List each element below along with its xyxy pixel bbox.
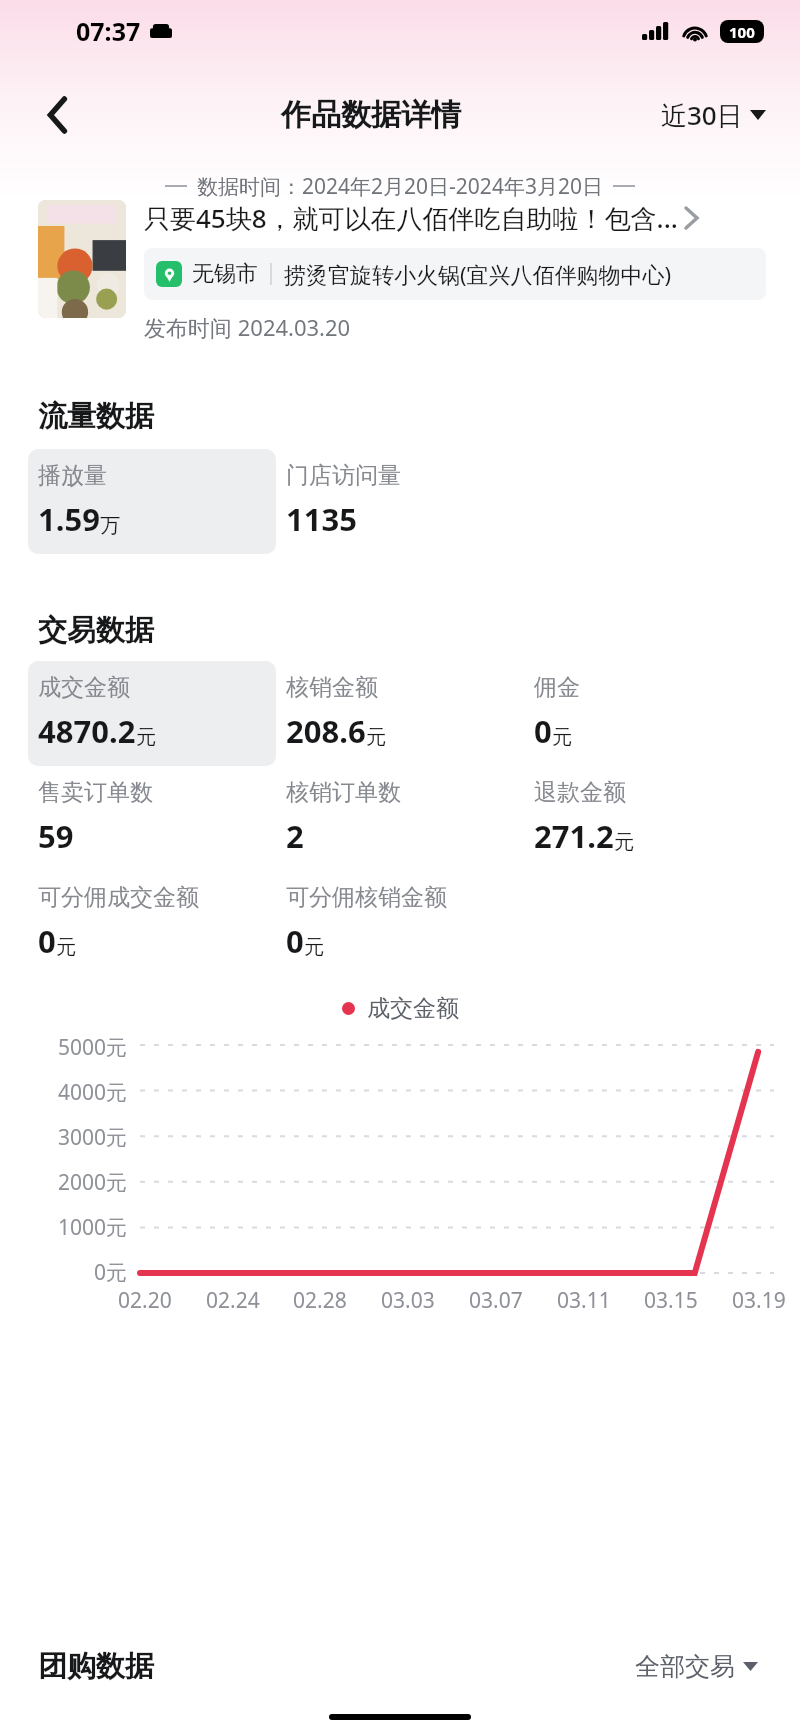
button[interactable]: 播放量: [28, 449, 276, 554]
button[interactable]: Back: [30, 87, 86, 143]
staticText: 元: [614, 830, 634, 855]
staticText: 元: [366, 725, 386, 750]
staticText: 02.20: [118, 1286, 172, 1315]
button[interactable]: 可分佣核销金额: [276, 871, 524, 976]
staticText: 07:37: [76, 14, 141, 48]
staticText: 可分佣核销金额: [286, 883, 447, 912]
staticText: 元: [136, 725, 156, 750]
button[interactable]: 售卖订单数: [28, 766, 276, 871]
staticText: 03.19: [732, 1286, 786, 1315]
staticText: 元: [552, 725, 572, 750]
staticText: 4870.2: [38, 710, 136, 752]
staticText: 万: [100, 513, 120, 538]
button[interactable]: 门店访问量: [276, 449, 524, 554]
staticText: 退款金额: [534, 778, 626, 807]
button[interactable]: 核销金额: [276, 661, 524, 766]
staticText: 03.07: [469, 1286, 523, 1315]
staticText: 门店访问量: [286, 461, 401, 490]
staticText: 交易数据: [38, 612, 154, 649]
button[interactable]: 全部交易: [631, 1645, 762, 1688]
staticText: 03.11: [557, 1286, 611, 1315]
staticText: 2: [286, 815, 304, 857]
staticText: 成交金额: [367, 994, 459, 1023]
staticText: 数据时间：2024年2月20日-2024年3月20日: [197, 172, 603, 200]
staticText: 成交金额: [38, 673, 130, 702]
staticText: 02.24: [206, 1286, 260, 1315]
staticText: 捞烫官旋转小火锅(宜兴八佰伴购物中心): [284, 259, 672, 289]
staticText: 271.2: [534, 815, 614, 857]
staticText: 0元: [94, 1258, 128, 1287]
staticText: 全部交易: [635, 1651, 735, 1682]
staticText: 播放量: [38, 461, 107, 490]
staticText: 售卖订单数: [38, 778, 153, 807]
staticText: 流量数据: [38, 398, 154, 435]
staticText: 0: [534, 710, 552, 752]
staticText: 03.03: [381, 1286, 435, 1315]
button[interactable]: 核销订单数: [276, 766, 524, 871]
staticText: 元: [56, 935, 76, 960]
staticText: 1.59: [38, 498, 100, 540]
staticText: 2000元: [58, 1168, 128, 1197]
button[interactable]: 成交金额: [28, 661, 276, 766]
staticText: 无锡市: [192, 260, 258, 288]
button[interactable]: 可分佣成交金额: [28, 871, 276, 976]
button[interactable]: 近30日: [657, 91, 770, 139]
staticText: 1000元: [58, 1213, 128, 1242]
staticText: 1135: [286, 498, 357, 540]
button[interactable]: 只要45块8，就可以在八佰伴吃自助啦！包含...: [28, 200, 772, 342]
staticText: 03.15: [644, 1286, 698, 1315]
staticText: 208.6: [286, 710, 366, 752]
staticText: 59: [38, 815, 74, 857]
staticText: 核销订单数: [286, 778, 401, 807]
staticText: 核销金额: [286, 673, 378, 702]
staticText: 3000元: [58, 1123, 128, 1152]
staticText: 0: [286, 920, 304, 962]
button[interactable]: 佣金: [524, 661, 772, 766]
staticText: 100: [729, 22, 755, 42]
staticText: 只要45块8，就可以在八佰伴吃自助啦！包含...: [144, 200, 678, 236]
staticText: 4000元: [58, 1078, 128, 1107]
staticText: 发布时间 2024.03.20: [144, 312, 351, 342]
staticText: 近30日: [661, 97, 743, 133]
staticText: 佣金: [534, 673, 580, 702]
button[interactable]: 无锡市: [144, 248, 766, 300]
button[interactable]: 退款金额: [524, 766, 772, 871]
staticText: 02.28: [293, 1286, 347, 1315]
staticText: 团购数据: [38, 1648, 154, 1685]
staticText: 可分佣成交金额: [38, 883, 199, 912]
staticText: 元: [304, 935, 324, 960]
staticText: 5000元: [58, 1033, 128, 1062]
staticText: 作品数据详情: [281, 96, 461, 134]
staticText: 0: [38, 920, 56, 962]
